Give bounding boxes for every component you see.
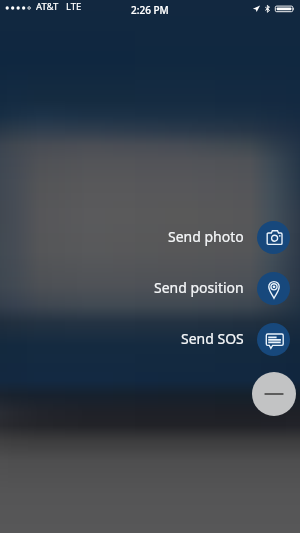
staticText: LTE: [66, 0, 82, 13]
staticText: Send SOS: [181, 329, 244, 348]
button[interactable]: Close menu: [252, 372, 296, 416]
button[interactable]: Send photo: [168, 221, 290, 254]
staticText: 2:26 PM: [131, 3, 169, 17]
staticText: AT&T: [36, 0, 59, 13]
staticText: Send photo: [168, 227, 244, 246]
button[interactable]: Send position: [154, 272, 290, 305]
staticText: Send position: [154, 278, 244, 297]
button[interactable]: Send SOS: [181, 323, 290, 356]
